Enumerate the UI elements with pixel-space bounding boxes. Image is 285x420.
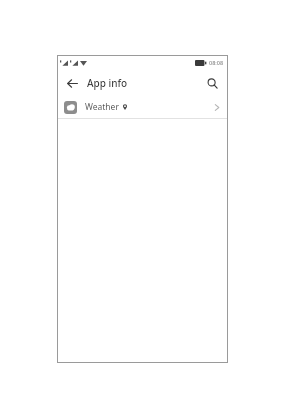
button[interactable]: Search (203, 74, 221, 92)
staticText: App info (87, 76, 128, 90)
staticText: 08:08 (209, 59, 224, 66)
button[interactable]: Weather (57, 96, 228, 118)
staticText: Weather (85, 101, 119, 113)
button[interactable]: Back (63, 74, 81, 92)
